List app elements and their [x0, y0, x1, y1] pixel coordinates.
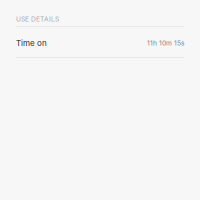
staticText: Time on: [16, 38, 47, 48]
staticText: USE DETAILS: [16, 15, 59, 23]
button[interactable]: Time on: [0, 27, 200, 57]
staticText: 11h 10m 15s: [147, 39, 185, 47]
